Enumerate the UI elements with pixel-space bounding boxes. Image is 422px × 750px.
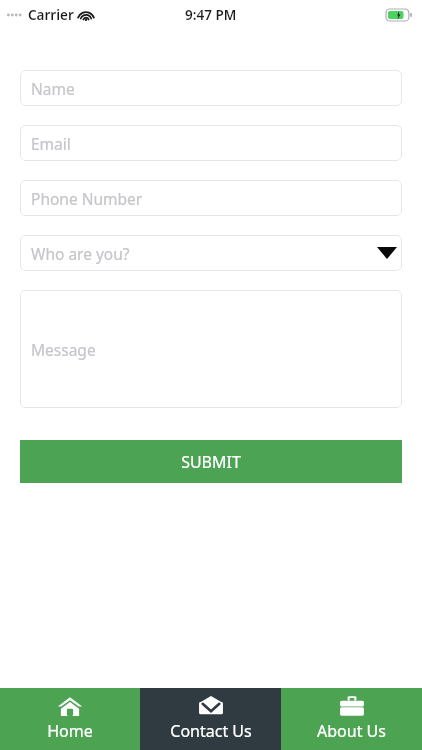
button[interactable]: Message xyxy=(20,290,402,408)
staticText: Contact Us xyxy=(170,720,252,742)
staticText: Message xyxy=(31,339,96,360)
button[interactable]: Email xyxy=(20,125,402,161)
staticText: Name xyxy=(31,78,75,99)
staticText: Phone Number xyxy=(31,188,143,209)
staticText: 9:47 PM xyxy=(185,6,237,24)
button[interactable]: SUBMIT xyxy=(20,440,402,483)
button[interactable]: Name xyxy=(20,70,402,106)
button[interactable]: Phone Number xyxy=(20,180,402,216)
staticText: About Us xyxy=(317,720,386,742)
button[interactable]: Contact Us xyxy=(140,688,281,750)
staticText: Who are you? xyxy=(31,243,130,264)
button[interactable]: Home xyxy=(0,688,140,750)
button[interactable]: Who are you? xyxy=(20,235,402,271)
staticText: SUBMIT xyxy=(181,451,241,473)
staticText: Home xyxy=(47,720,93,742)
button[interactable]: About Us xyxy=(281,688,422,750)
staticText: Carrier xyxy=(28,6,74,24)
staticText: Email xyxy=(31,133,71,154)
